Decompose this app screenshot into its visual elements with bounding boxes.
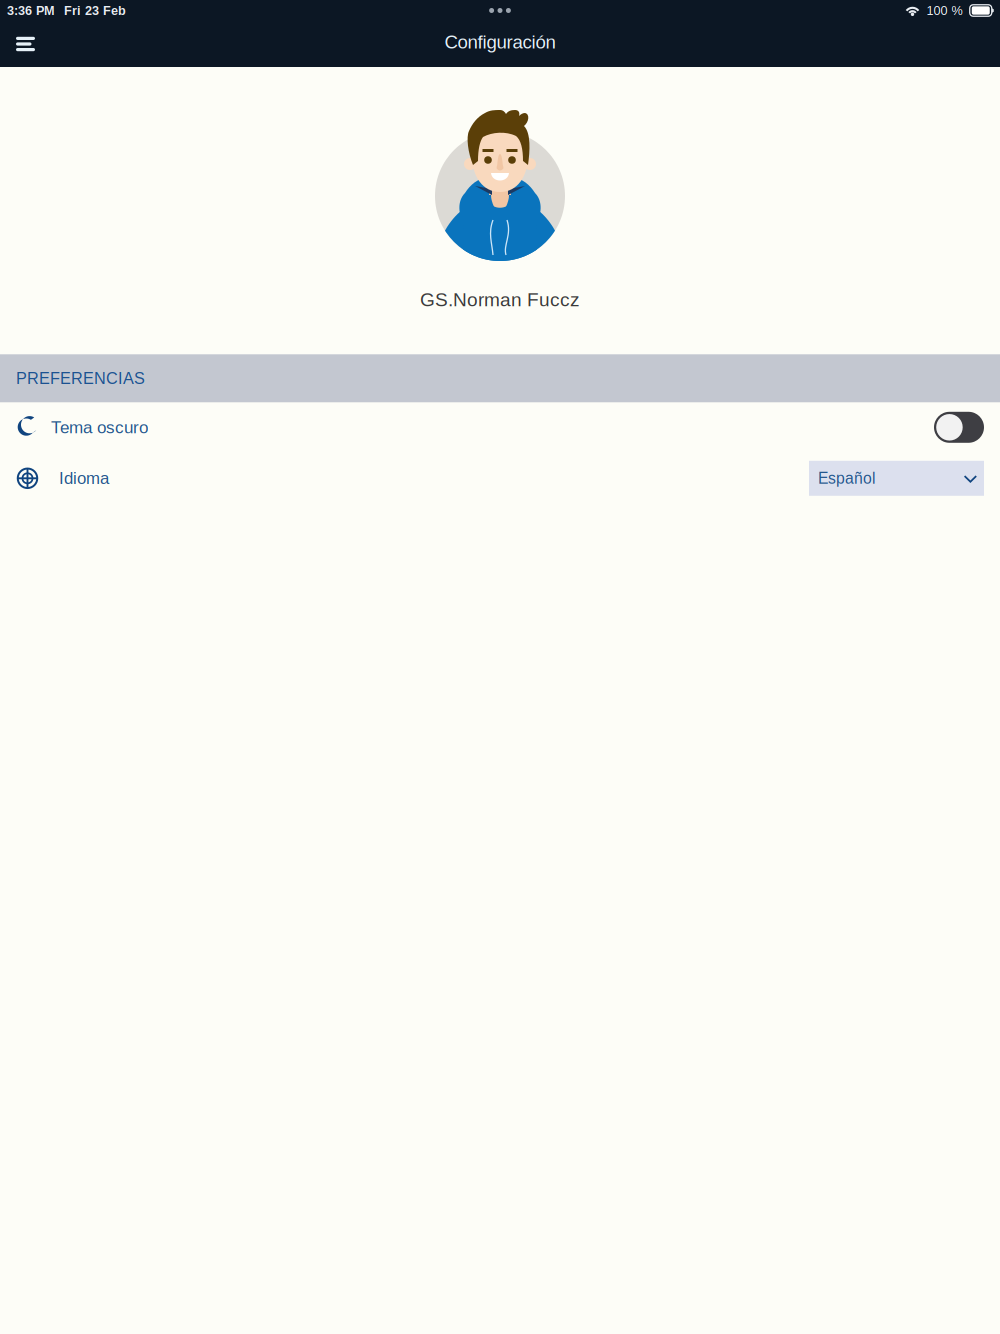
staticText: Idioma	[59, 469, 109, 488]
staticText: Fri 23 Feb	[64, 3, 126, 18]
button[interactable]: Menu	[0, 21, 54, 67]
staticText: GS.Norman Fuccz	[420, 289, 580, 310]
staticText: 3:36 PM	[7, 3, 55, 18]
staticText: Configuración	[444, 32, 555, 52]
staticText: 100 %	[926, 3, 962, 18]
button[interactable]: Tema oscuro	[0, 402, 1000, 452]
staticText: PREFERENCIAS	[16, 369, 145, 387]
staticText: Español	[818, 469, 875, 487]
button[interactable]: Idioma	[0, 452, 1000, 504]
staticText: Tema oscuro	[51, 418, 148, 437]
